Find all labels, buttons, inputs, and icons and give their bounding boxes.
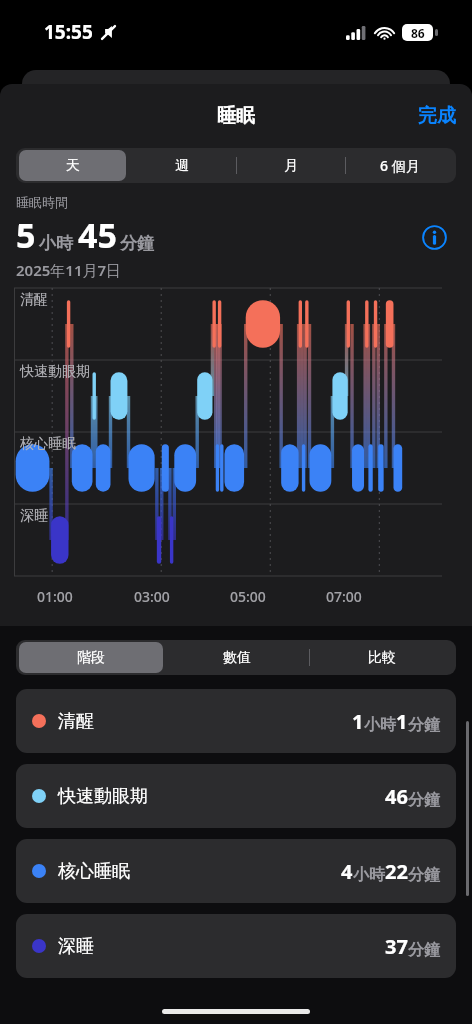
staticText: 天: [66, 157, 80, 175]
staticText: 小時: [39, 233, 73, 254]
staticText: 深睡: [58, 935, 94, 958]
staticText: 核心睡眠: [58, 860, 130, 883]
staticText: 核心睡眠: [20, 435, 76, 453]
button[interactable]: 清醒: [16, 689, 456, 753]
staticText: 小時: [364, 715, 396, 735]
staticText: 月: [284, 157, 298, 175]
button[interactable]: 深睡: [16, 914, 456, 978]
staticText: 快速動眼期: [20, 363, 90, 381]
staticText: 15:55: [44, 19, 93, 45]
staticText: 05:00: [230, 587, 266, 606]
staticText: 週: [175, 157, 189, 175]
staticText: 03:00: [134, 587, 170, 606]
staticText: 07:00: [326, 587, 362, 606]
staticText: 小時: [353, 865, 385, 885]
staticText: 37: [385, 933, 408, 960]
staticText: 比較: [368, 649, 396, 667]
staticText: 睡眠: [217, 104, 255, 128]
staticText: 6 個月: [380, 156, 420, 175]
staticText: 1: [352, 708, 364, 735]
staticText: 分鐘: [408, 940, 440, 960]
staticText: 45: [78, 212, 117, 258]
staticText: 階段: [77, 649, 105, 667]
staticText: 86: [411, 25, 425, 41]
staticText: 深睡: [20, 507, 48, 525]
staticText: 分鐘: [120, 233, 154, 254]
staticText: 01:00: [37, 587, 73, 606]
staticText: 1: [396, 708, 408, 735]
button[interactable]: 週: [128, 150, 235, 181]
staticText: 分鐘: [408, 715, 440, 735]
staticText: 2025年11月7日: [16, 260, 122, 280]
staticText: 22: [385, 858, 408, 885]
staticText: 分鐘: [408, 865, 440, 885]
button[interactable]: 天: [19, 150, 126, 181]
button[interactable]: 數值: [165, 642, 308, 673]
button[interactable]: 快速動眼期: [16, 764, 456, 828]
staticText: 睡眠時間: [16, 194, 68, 210]
staticText: 完成: [418, 104, 456, 128]
button[interactable]: 6 個月: [346, 150, 453, 181]
button[interactable]: Info: [412, 215, 456, 259]
button[interactable]: 完成: [402, 94, 472, 138]
button[interactable]: 比較: [310, 642, 453, 673]
staticText: 46: [385, 783, 408, 810]
staticText: 清醒: [20, 291, 48, 309]
staticText: 清醒: [58, 710, 94, 733]
staticText: 數值: [223, 649, 251, 667]
button[interactable]: 階段: [19, 642, 163, 673]
staticText: 5: [16, 212, 36, 258]
staticText: 4: [341, 858, 353, 885]
button[interactable]: 核心睡眠: [16, 839, 456, 903]
staticText: 快速動眼期: [58, 785, 148, 808]
staticText: 分鐘: [408, 790, 440, 810]
button[interactable]: 月: [237, 150, 344, 181]
